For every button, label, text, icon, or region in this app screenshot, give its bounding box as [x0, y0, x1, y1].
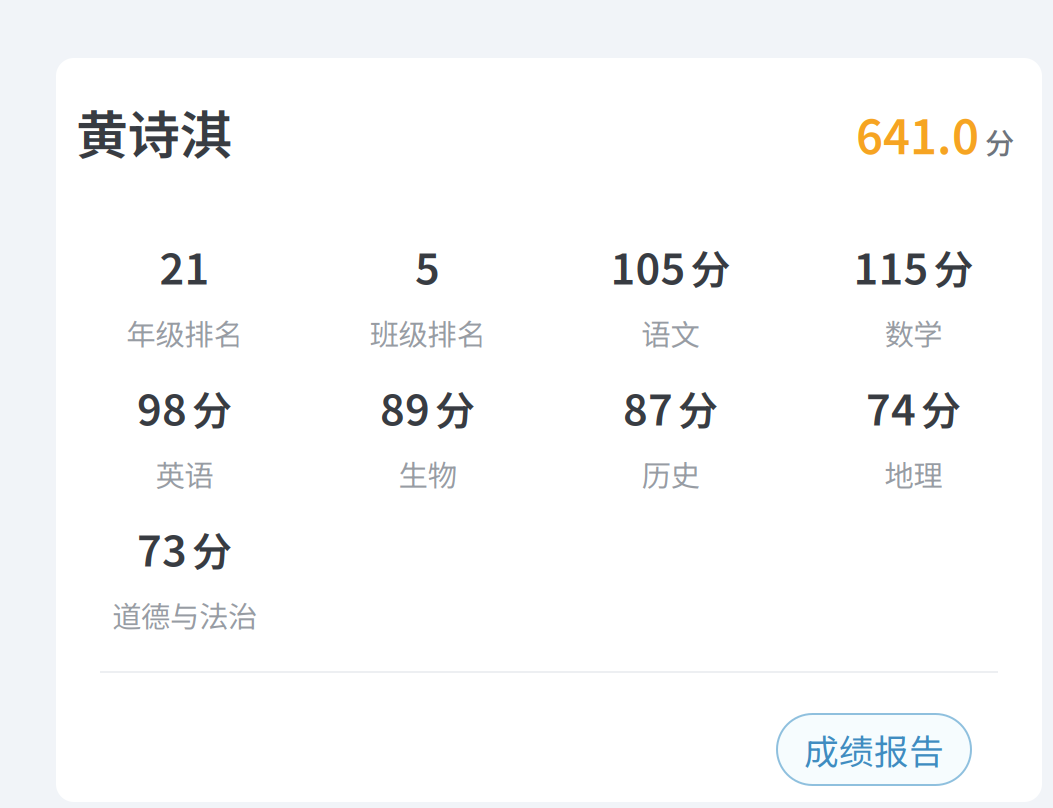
- staticText: 74: [866, 376, 916, 438]
- staticText: 98: [137, 376, 187, 438]
- staticText: 成绩报告: [804, 724, 944, 775]
- staticText: 道德与法治: [112, 593, 257, 636]
- staticText: 分: [192, 520, 232, 578]
- staticText: 黄诗淇: [76, 94, 232, 169]
- staticText: 分: [678, 379, 718, 437]
- staticText: 105: [610, 235, 685, 297]
- staticText: 生物: [398, 452, 456, 495]
- staticText: 641.0: [856, 100, 979, 168]
- staticText: 分: [192, 379, 232, 437]
- staticText: 语文: [641, 311, 699, 354]
- staticText: 89: [380, 376, 430, 438]
- staticText: 115: [853, 235, 928, 297]
- staticText: 地理: [884, 452, 942, 495]
- button[interactable]: 成绩报告: [777, 714, 971, 785]
- staticText: 英语: [155, 452, 213, 495]
- staticText: 数学: [884, 311, 942, 354]
- staticText: 历史: [641, 452, 699, 495]
- staticText: 21: [159, 235, 209, 297]
- staticText: 分: [435, 379, 475, 437]
- staticText: 5: [415, 235, 440, 297]
- staticText: 班级排名: [369, 311, 485, 354]
- staticText: 分: [933, 238, 973, 296]
- staticText: 分: [921, 379, 961, 437]
- staticText: 分: [985, 120, 1014, 163]
- staticText: 87: [623, 376, 673, 438]
- staticText: 73: [137, 517, 187, 579]
- staticText: 年级排名: [126, 311, 242, 354]
- staticText: 分: [690, 238, 730, 296]
